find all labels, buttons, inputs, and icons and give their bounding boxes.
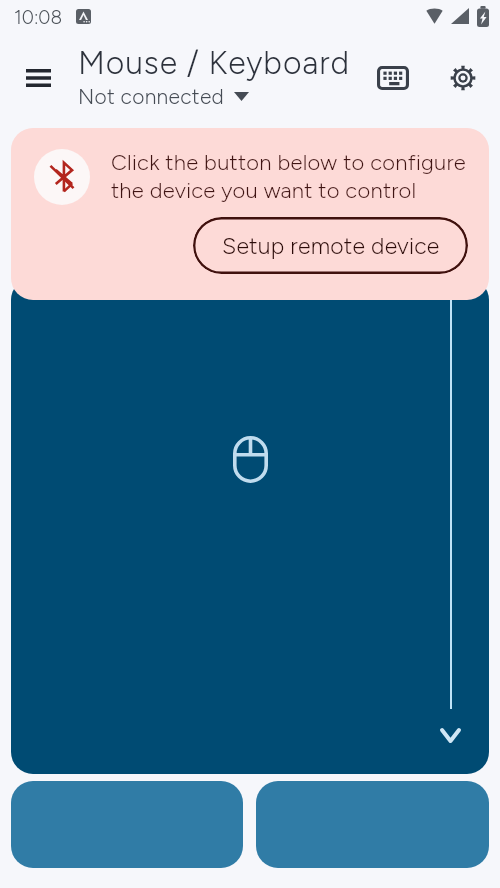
staticText: Click the button below to configure the … bbox=[111, 149, 479, 204]
button[interactable]: Left click bbox=[11, 781, 243, 868]
staticText: Not connected bbox=[78, 84, 225, 109]
button[interactable]: Right click bbox=[256, 781, 489, 868]
staticText: Mouse / Keyboard bbox=[78, 44, 350, 82]
staticText: Setup remote device bbox=[222, 232, 440, 260]
button[interactable]: Settings bbox=[439, 54, 487, 102]
staticText: 10:08 bbox=[14, 6, 63, 29]
button[interactable]: Touchpad bbox=[11, 278, 489, 774]
button[interactable]: Setup remote device bbox=[193, 217, 468, 274]
button[interactable]: Keyboard bbox=[368, 53, 418, 103]
button[interactable]: Menu bbox=[14, 54, 62, 102]
button[interactable]: Not connected bbox=[78, 84, 249, 109]
